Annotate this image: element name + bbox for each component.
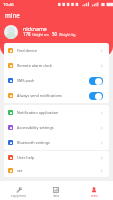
staticText: mine <box>91 194 98 198</box>
staticText: Remote alarm clock <box>17 63 98 68</box>
button[interactable]: Equipment tab <box>0 183 37 198</box>
button[interactable]: Always send notifications <box>4 88 109 103</box>
staticText: mine <box>5 11 20 19</box>
button[interactable]: set <box>4 164 109 177</box>
staticText: 178 <box>23 31 31 37</box>
button[interactable]: Mine tab <box>75 183 113 198</box>
staticText: Accessibility settings <box>17 125 98 130</box>
staticText: 10:46 <box>3 2 14 8</box>
button[interactable]: Notification application <box>4 105 109 120</box>
button[interactable]: Remote alarm clock <box>4 58 109 73</box>
button[interactable]: Find device <box>4 43 109 58</box>
button[interactable]: Accessibility settings <box>4 120 109 135</box>
staticText: Always send notifications <box>17 93 87 98</box>
button[interactable]: Data tab <box>37 183 75 198</box>
staticText: 50 <box>52 31 58 37</box>
button[interactable]: SMS push <box>4 73 109 88</box>
staticText: User help <box>17 155 98 160</box>
staticText: data <box>53 194 60 198</box>
staticText: nickname <box>23 25 47 32</box>
staticText: Notification application <box>17 110 98 115</box>
staticText: equipment <box>11 194 26 198</box>
staticText: set <box>17 168 98 173</box>
staticText: Weight kg <box>58 32 76 37</box>
button[interactable]: Bluetooth settings <box>4 135 109 150</box>
staticText: Height cm <box>31 32 49 37</box>
staticText: Find device <box>17 48 98 53</box>
staticText: Bluetooth settings <box>17 140 98 145</box>
staticText: SMS push <box>17 78 87 83</box>
button[interactable]: User help <box>4 151 109 164</box>
